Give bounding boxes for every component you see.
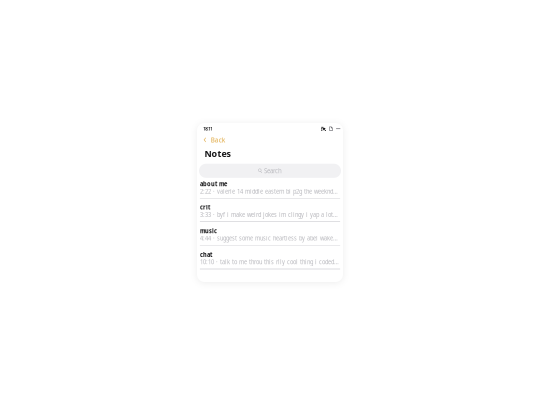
button[interactable]: music bbox=[200, 222, 340, 246]
staticText: crit bbox=[200, 203, 210, 211]
staticText: chat bbox=[200, 250, 212, 259]
staticText: 3:33 · byf i make weird jokes im clingy … bbox=[200, 210, 338, 219]
staticText: 10:10 · talk to me throu this rlly cool … bbox=[200, 257, 339, 266]
staticText: music bbox=[200, 226, 217, 235]
staticText: 18:11 bbox=[203, 125, 212, 132]
staticText: about me bbox=[200, 179, 227, 188]
staticText: Search bbox=[264, 166, 282, 175]
staticText: Notes bbox=[204, 147, 230, 160]
button[interactable]: chat bbox=[200, 246, 340, 269]
button[interactable]: Back bbox=[197, 131, 232, 145]
staticText: Back bbox=[211, 135, 226, 144]
staticText: 4:44 · suggest some music heartless by a… bbox=[200, 234, 338, 242]
button[interactable]: crit bbox=[200, 199, 340, 222]
button[interactable]: about me bbox=[200, 178, 340, 199]
staticText: 2:22 · valerie 14 middle eastern bi p2g … bbox=[200, 187, 338, 195]
